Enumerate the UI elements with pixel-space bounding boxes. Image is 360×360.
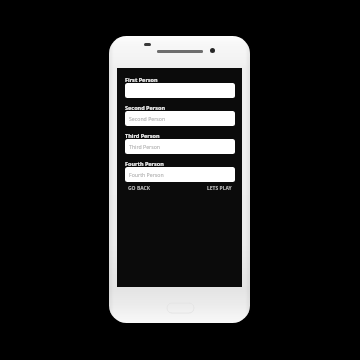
staticText: First Person [125,76,158,83]
button[interactable]: Second Person [125,111,235,126]
staticText: Fourth Person [129,171,164,178]
staticText: Third Person [129,143,161,150]
staticText: LETS PLAY [207,185,232,192]
button[interactable]: Fourth Person [125,167,235,182]
staticText: Fourth Person [125,160,164,167]
staticText: Third Person [125,132,160,139]
button[interactable]: LETS PLAY [204,183,235,194]
button[interactable]: Third Person [125,139,235,154]
staticText: GO BACK [128,185,151,192]
staticText: Second Person [125,104,166,111]
button[interactable]: GO BACK [125,183,154,194]
staticText: Second Person [129,115,166,122]
button[interactable] [125,83,235,98]
